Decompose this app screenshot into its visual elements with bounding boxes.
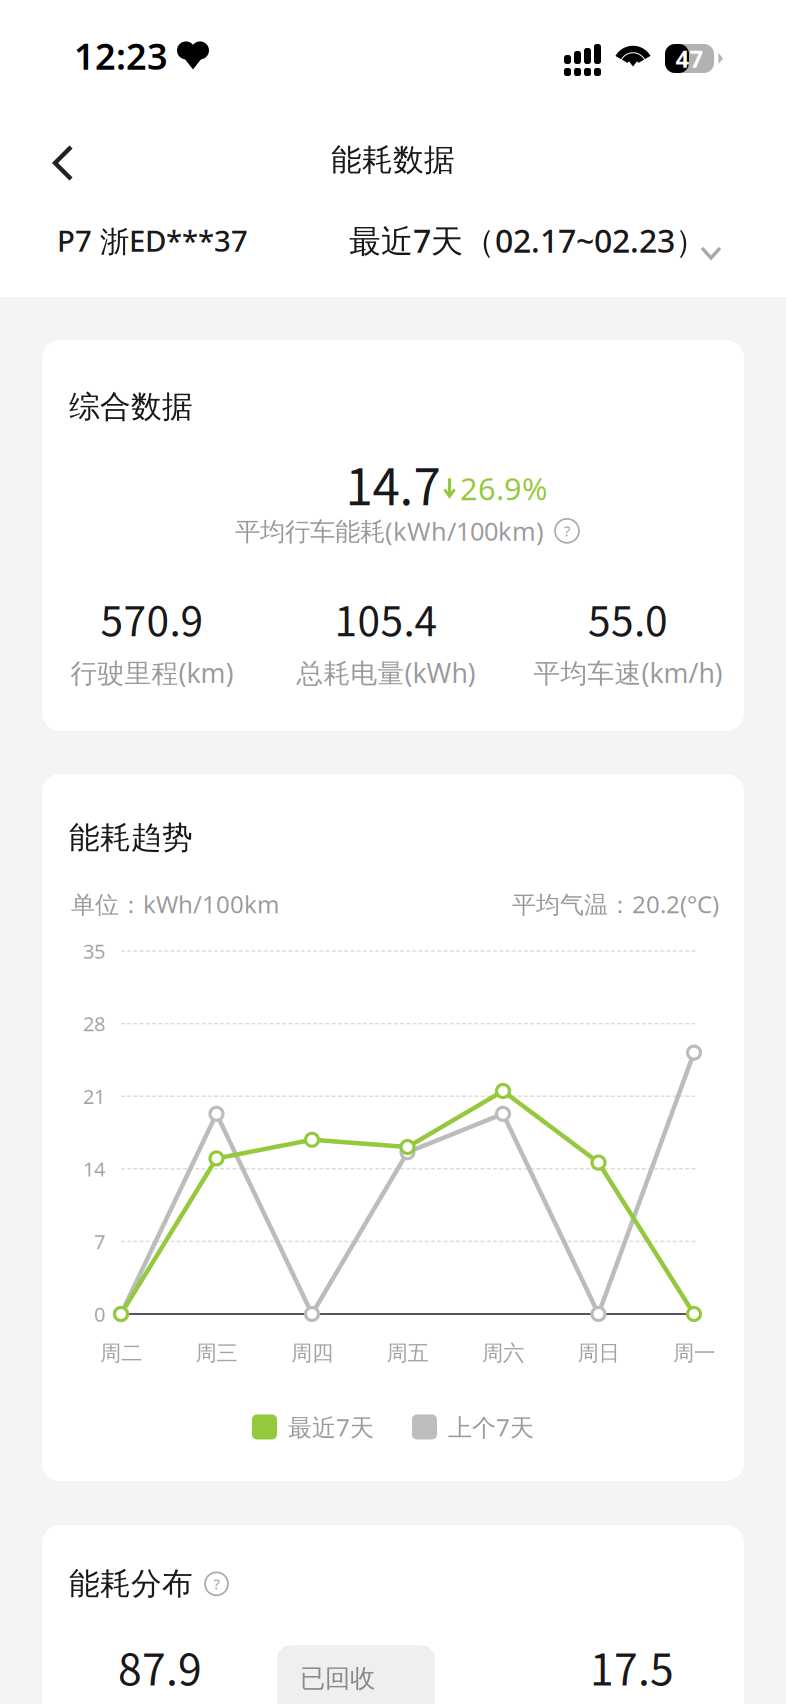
staticText: 35 — [83, 938, 105, 964]
staticText: 周二 — [100, 1340, 142, 1366]
staticText: 26.9% — [460, 468, 547, 509]
staticText: 上个7天 — [448, 1411, 534, 1443]
staticText: 14 — [83, 1155, 105, 1182]
staticText: 最近7天（02.17~02.23） — [349, 219, 707, 261]
staticText: 平均气温：20.2(°C) — [512, 888, 719, 920]
staticText: 28 — [83, 1010, 105, 1037]
staticText: ? — [213, 1574, 219, 1594]
staticText: 已回收 — [300, 1663, 375, 1694]
staticText: 总耗电量(kWh) — [296, 655, 475, 690]
staticText: 行驶里程(km) — [70, 655, 233, 690]
staticText: 周五 — [386, 1340, 428, 1366]
staticText: 21 — [83, 1083, 105, 1109]
staticText: ? — [564, 521, 570, 541]
staticText: 47 — [675, 43, 703, 74]
staticText: 105.4 — [334, 589, 437, 648]
staticText: P7 浙ED***37 — [57, 221, 248, 260]
staticText: 综合数据 — [69, 388, 193, 426]
button[interactable]: Back — [20, 124, 106, 202]
staticText: 0 — [94, 1301, 105, 1327]
staticText: 能耗趋势 — [69, 819, 193, 857]
staticText: 最近7天 — [288, 1411, 374, 1443]
staticText: 87.9 — [118, 1636, 202, 1698]
staticText: 周四 — [291, 1340, 333, 1366]
staticText: 能耗数据 — [331, 141, 455, 179]
staticText: 单位：kWh/100km — [71, 888, 279, 920]
button[interactable]: 最近7天（02.17~02.23） — [349, 219, 722, 265]
staticText: 能耗分布 — [69, 1565, 193, 1603]
staticText: 周六 — [482, 1340, 524, 1366]
staticText: 55.0 — [588, 589, 668, 648]
staticText: 周三 — [195, 1340, 237, 1366]
staticText: 平均行车能耗(kWh/100km) — [235, 514, 544, 548]
staticText: 12:23 — [74, 32, 168, 80]
staticText: 平均车速(km/h) — [533, 655, 722, 690]
staticText: 17.5 — [590, 1636, 674, 1698]
staticText: 570.9 — [100, 589, 203, 648]
staticText: 7 — [94, 1228, 105, 1255]
staticText: 周一 — [673, 1340, 715, 1366]
staticText: 14.7 — [345, 448, 440, 519]
staticText: 周日 — [577, 1340, 619, 1366]
